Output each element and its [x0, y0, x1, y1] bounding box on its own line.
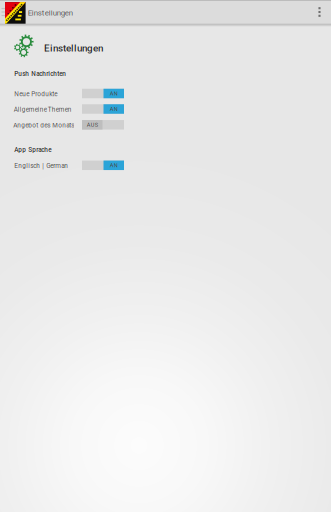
staticText: AN	[110, 90, 118, 97]
button[interactable]: AN	[82, 104, 124, 114]
staticText: Push Nachrichten	[14, 70, 66, 78]
staticText: Neue Produkte	[14, 90, 57, 98]
button[interactable]: AUS	[82, 120, 124, 130]
staticText: App Sprache	[14, 146, 51, 154]
staticText: Englisch | German	[14, 162, 68, 170]
staticText: Einstellungen	[44, 42, 103, 54]
staticText: Einstellungen	[28, 8, 73, 17]
button[interactable]: More options	[308, 0, 330, 24]
button[interactable]: AN	[82, 161, 124, 170]
staticText: Allgemeine Themen	[14, 106, 72, 113]
staticText: AN	[110, 106, 118, 112]
staticText: Angebot des Monats	[13, 122, 74, 129]
staticText: AN	[110, 162, 118, 169]
button[interactable]: Open navigation menu	[0, 0, 10, 24]
staticText: AUS	[87, 121, 98, 128]
button[interactable]: AN	[82, 89, 124, 98]
